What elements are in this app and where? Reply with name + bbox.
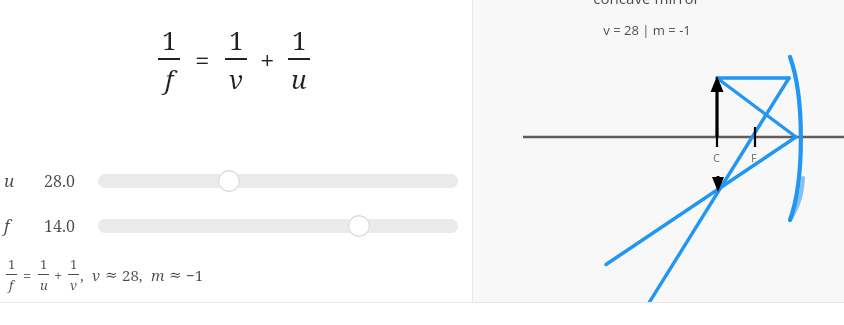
- staticText: 28,: [122, 265, 143, 285]
- staticText: 1: [40, 255, 48, 273]
- staticText: v: [92, 265, 101, 285]
- staticText: v: [229, 61, 243, 96]
- staticText: m: [151, 265, 165, 285]
- staticText: v = 28 | m = -1: [603, 21, 691, 39]
- button[interactable]: u: [0, 158, 473, 203]
- staticText: f: [4, 214, 10, 237]
- staticText: =: [195, 42, 210, 77]
- staticText: 28.0: [44, 170, 75, 192]
- staticText: 14.0: [44, 215, 75, 237]
- staticText: =: [23, 265, 32, 285]
- staticText: 1: [162, 22, 177, 57]
- staticText: u: [291, 61, 307, 96]
- button[interactable]: f: [0, 203, 473, 248]
- staticText: 1: [8, 255, 16, 273]
- staticText: concave mirror: [593, 0, 700, 8]
- staticText: −1: [186, 265, 204, 285]
- staticText: f: [9, 276, 14, 294]
- staticText: 1: [292, 22, 307, 57]
- staticText: ,: [80, 265, 84, 285]
- staticText: +: [54, 265, 63, 285]
- staticText: ≈: [169, 266, 182, 283]
- staticText: C: [713, 150, 720, 165]
- staticText: 1: [229, 22, 244, 57]
- staticText: ≈: [105, 266, 118, 283]
- staticText: u: [4, 169, 15, 192]
- staticText: +: [260, 42, 275, 77]
- staticText: 1: [70, 255, 78, 273]
- staticText: v: [70, 276, 77, 294]
- staticText: F: [751, 150, 757, 165]
- staticText: f: [165, 61, 174, 96]
- staticText: u: [40, 276, 48, 294]
